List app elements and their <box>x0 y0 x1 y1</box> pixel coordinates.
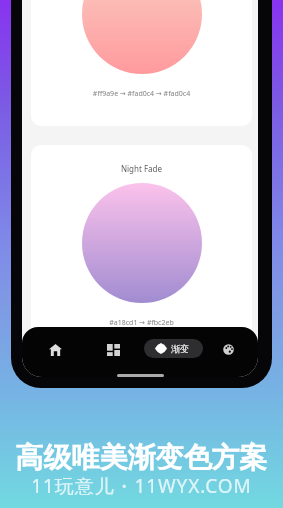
staticText: Night Fade <box>31 163 252 174</box>
button[interactable]: Home <box>42 336 69 363</box>
button[interactable]: 渐变 <box>144 339 203 358</box>
button[interactable]: Palette <box>215 336 242 363</box>
staticText: 高级唯美渐变色方案 <box>0 440 283 475</box>
button[interactable]: Rare Wind <box>31 0 252 126</box>
staticText: #ff9a9e → #fad0c4 → #fad0c4 <box>31 89 252 99</box>
staticText: #a18cd1 → #fbc2eb <box>31 318 252 328</box>
button[interactable]: Dashboard <box>100 336 127 363</box>
staticText: 11玩意儿・11WYX.COM <box>0 473 283 499</box>
staticText: 渐变 <box>171 343 189 354</box>
button[interactable]: Night Fade <box>31 145 252 355</box>
